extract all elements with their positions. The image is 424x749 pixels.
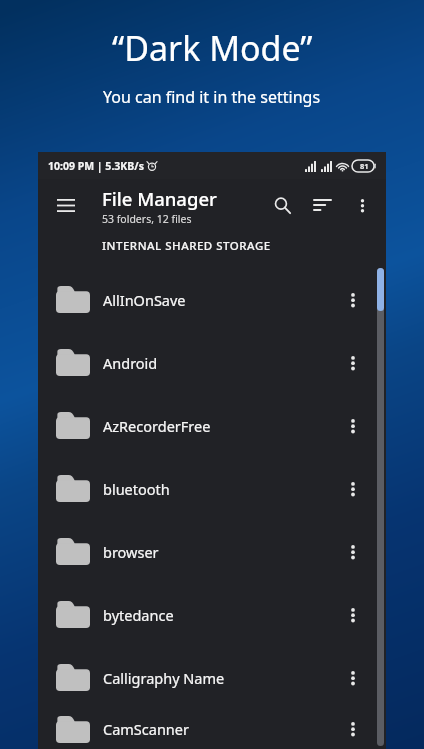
- staticText: Android: [103, 353, 333, 373]
- button[interactable]: More options for bytedance: [333, 591, 373, 639]
- button[interactable]: CamScanner: [38, 709, 386, 749]
- button[interactable]: browser: [38, 520, 386, 583]
- button[interactable]: More options for CamScanner: [333, 709, 373, 749]
- staticText: You can find it in the settings: [103, 86, 321, 108]
- button[interactable]: More options for Android: [333, 339, 373, 387]
- staticText: CamScanner: [103, 719, 333, 739]
- staticText: browser: [103, 542, 333, 562]
- button[interactable]: bluetooth: [38, 457, 386, 520]
- staticText: “Dark Mode”: [112, 25, 313, 71]
- button[interactable]: AzRecorderFree: [38, 394, 386, 457]
- staticText: bluetooth: [103, 479, 333, 499]
- staticText: 10:09 PM | 5.3KB/s: [48, 159, 144, 173]
- button[interactable]: More options for browser: [333, 528, 373, 576]
- staticText: Calligraphy Name: [103, 668, 333, 688]
- button[interactable]: AllInOnSave: [38, 268, 386, 331]
- button[interactable]: Sort: [302, 185, 342, 225]
- staticText: 53 folders, 12 files: [102, 212, 192, 226]
- button[interactable]: More options for AllInOnSave: [333, 276, 373, 324]
- staticText: bytedance: [103, 605, 333, 625]
- button[interactable]: Calligraphy Name: [38, 646, 386, 709]
- button[interactable]: More options: [342, 185, 382, 225]
- button[interactable]: More options for Calligraphy Name: [333, 654, 373, 702]
- button[interactable]: Open navigation menu: [46, 185, 86, 225]
- staticText: 81: [360, 161, 369, 171]
- staticText: File Manager: [102, 186, 217, 211]
- button[interactable]: Search: [262, 185, 302, 225]
- button[interactable]: bytedance: [38, 583, 386, 646]
- staticText: AllInOnSave: [103, 290, 333, 310]
- button[interactable]: More options for bluetooth: [333, 465, 373, 513]
- staticText: AzRecorderFree: [103, 416, 333, 436]
- button[interactable]: Android: [38, 331, 386, 394]
- button[interactable]: More options for AzRecorderFree: [333, 402, 373, 450]
- staticText: INTERNAL SHARED STORAGE: [102, 238, 271, 254]
